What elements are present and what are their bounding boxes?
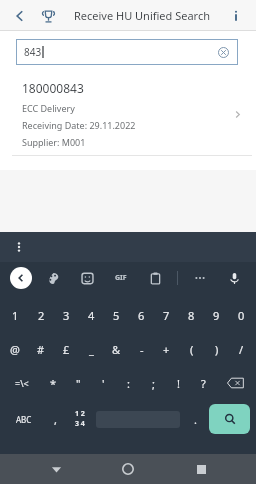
staticText: £ <box>63 342 70 357</box>
button[interactable]: Favorites <box>34 2 62 30</box>
button[interactable]: ' <box>91 366 116 400</box>
staticText: 9 <box>213 308 220 323</box>
button[interactable]: Close toolbar <box>10 267 32 289</box>
button[interactable]: 9 <box>204 298 229 332</box>
button[interactable]: - <box>129 332 154 366</box>
button[interactable]: Clipboard <box>143 266 167 290</box>
button[interactable]: Themes <box>41 266 65 290</box>
staticText: ( <box>190 342 194 357</box>
staticText: @ <box>10 342 20 357</box>
button[interactable]: ( <box>179 332 204 366</box>
button[interactable]: ! <box>166 366 191 400</box>
staticText: : <box>127 376 130 391</box>
staticText: ABC <box>16 414 32 425</box>
button[interactable]: ? <box>191 366 216 400</box>
staticText: 1 <box>12 308 19 323</box>
button[interactable]: More <box>188 266 212 290</box>
staticText: Supplier: M001 <box>22 136 86 148</box>
button[interactable]: 5 <box>104 298 129 332</box>
button[interactable]: =\< <box>2 366 41 400</box>
button[interactable]: ABC <box>4 400 43 438</box>
staticText: 1 2 <box>75 409 85 419</box>
staticText: 0 <box>238 308 245 323</box>
staticText: ! <box>177 376 180 391</box>
button[interactable]: ; <box>141 366 166 400</box>
staticText: ECC Delivery <box>22 102 75 114</box>
button[interactable]: Home <box>111 454 145 484</box>
button[interactable]: Recent apps <box>184 454 218 484</box>
staticText: . <box>194 412 197 427</box>
staticText: / <box>239 342 244 357</box>
staticText: 5 <box>113 308 120 323</box>
staticText: Receive HU Unified Search <box>74 8 211 23</box>
staticText: 843 <box>24 45 42 59</box>
button[interactable]: GIF <box>109 266 133 290</box>
button[interactable]: Back <box>39 454 73 484</box>
staticText: 3 4 <box>75 419 85 429</box>
button[interactable]: ) <box>204 332 229 366</box>
staticText: # <box>37 342 45 357</box>
button[interactable]: Clear search <box>214 43 232 61</box>
button[interactable]: Back <box>6 2 34 30</box>
staticText: ' <box>102 376 105 391</box>
staticText: , <box>54 412 57 427</box>
button[interactable]: 4 <box>79 298 104 332</box>
button[interactable]: * <box>41 366 66 400</box>
staticText: + <box>163 342 170 357</box>
staticText: 180000843 <box>22 80 84 96</box>
button[interactable]: 180000843 <box>0 73 256 155</box>
button[interactable]: 0 <box>229 298 254 332</box>
staticText: 4 <box>88 308 95 323</box>
staticText: =\< <box>15 377 29 389</box>
button[interactable]: " <box>66 366 91 400</box>
button[interactable]: More options <box>9 237 29 257</box>
staticText: " <box>76 376 81 391</box>
staticText: ) <box>215 342 219 357</box>
staticText: ; <box>152 376 155 391</box>
button[interactable]: . <box>183 400 207 438</box>
button[interactable]: Numbers <box>67 400 93 438</box>
button[interactable]: Search <box>209 404 250 434</box>
staticText: ? <box>201 376 206 391</box>
staticText: _ <box>89 342 94 357</box>
button[interactable]: , <box>43 400 67 438</box>
staticText: * <box>50 376 57 391</box>
button[interactable]: 6 <box>129 298 154 332</box>
staticText: GIF <box>115 273 127 283</box>
button[interactable]: + <box>154 332 179 366</box>
staticText: 6 <box>138 308 145 323</box>
button[interactable]: 1 <box>2 298 28 332</box>
button[interactable]: 2 <box>28 298 54 332</box>
button[interactable]: 843 <box>16 39 238 65</box>
button[interactable]: Voice input <box>222 266 246 290</box>
button[interactable]: # <box>28 332 54 366</box>
staticText: 3 <box>63 308 70 323</box>
button[interactable]: Information <box>222 2 250 30</box>
button[interactable]: _ <box>79 332 104 366</box>
staticText: 2 <box>38 308 45 323</box>
button[interactable]: £ <box>54 332 79 366</box>
button[interactable]: Backspace <box>216 366 254 400</box>
staticText: - <box>140 342 144 357</box>
button[interactable]: @ <box>2 332 28 366</box>
button[interactable]: 7 <box>154 298 179 332</box>
button[interactable]: 8 <box>179 298 204 332</box>
staticText: & <box>112 342 121 357</box>
button[interactable]: Stickers <box>75 266 99 290</box>
staticText: Receiving Date: 29.11.2022 <box>22 119 136 131</box>
staticText: 8 <box>188 308 195 323</box>
button[interactable]: : <box>116 366 141 400</box>
button[interactable]: / <box>229 332 254 366</box>
staticText: 7 <box>163 308 170 323</box>
button[interactable]: 3 <box>54 298 79 332</box>
button[interactable]: & <box>104 332 129 366</box>
